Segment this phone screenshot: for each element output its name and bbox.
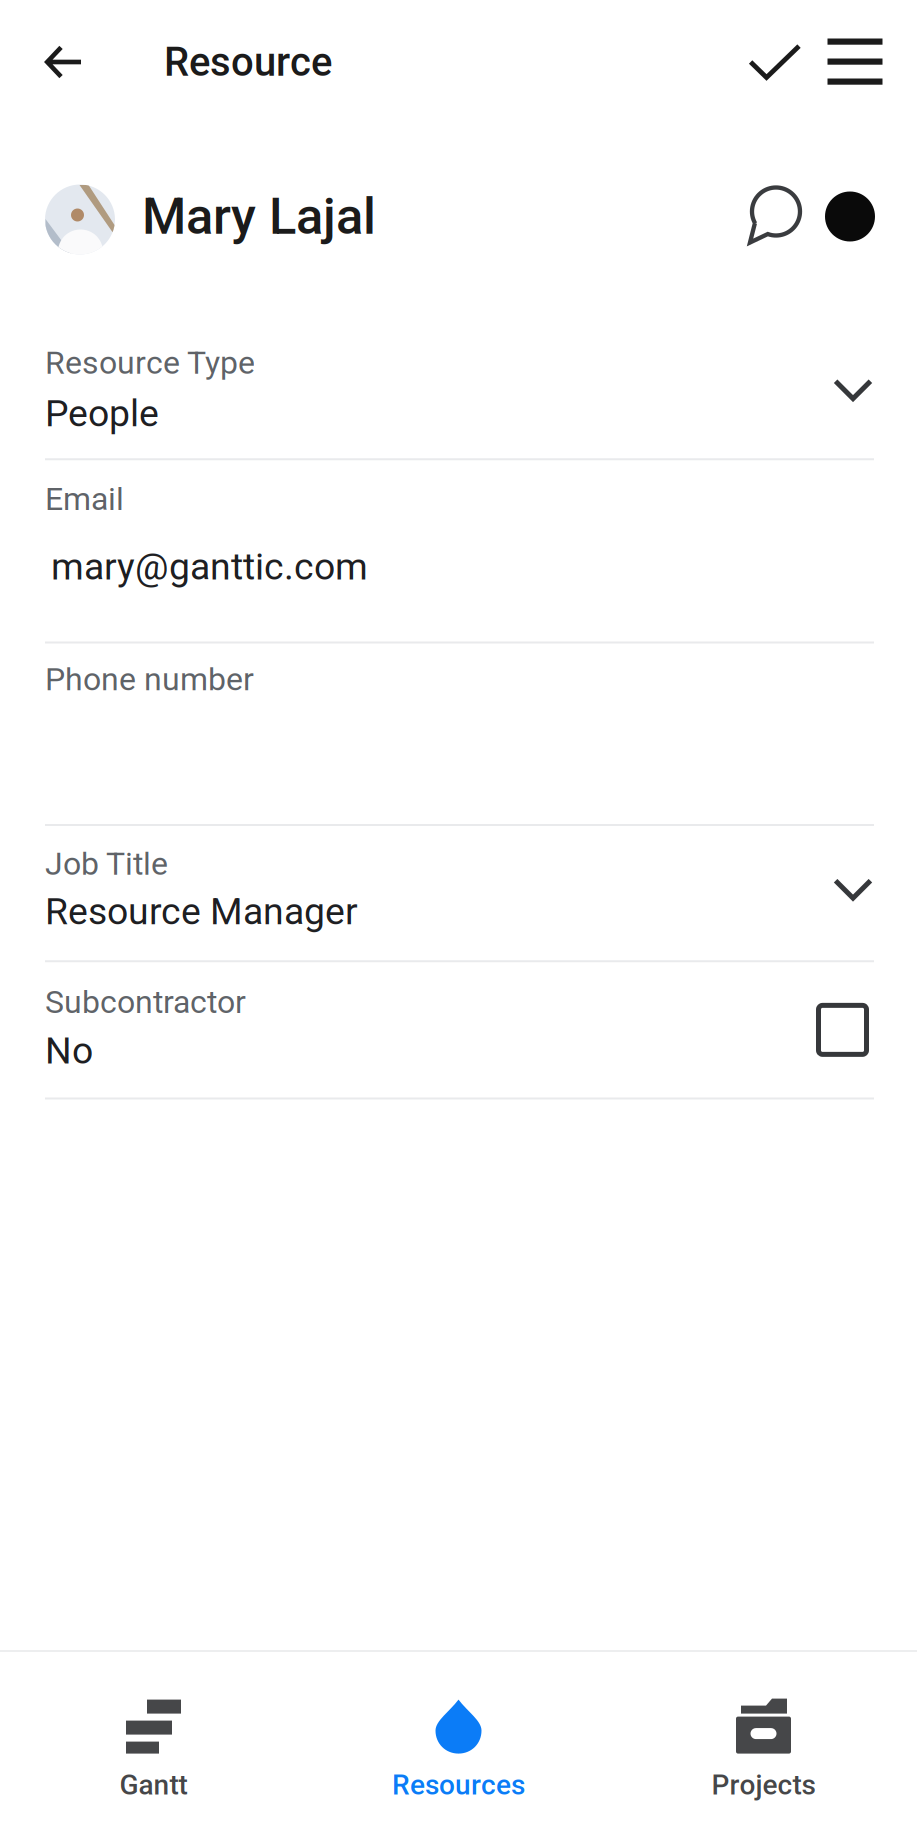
staticText: Resource xyxy=(164,39,332,85)
button[interactable]: Resource Type xyxy=(0,309,917,458)
staticText: Resource Type xyxy=(45,344,255,381)
button[interactable]: Save xyxy=(735,22,815,102)
button[interactable]: Colour xyxy=(810,176,896,256)
staticText: Projects xyxy=(711,1769,815,1801)
button[interactable]: Email xyxy=(0,460,917,641)
staticText: Email xyxy=(45,480,124,518)
button[interactable]: Gantt xyxy=(1,1651,306,1833)
button[interactable]: Messages xyxy=(730,176,810,256)
button[interactable]: Back xyxy=(22,20,106,104)
staticText: Resource Manager xyxy=(45,889,358,933)
button[interactable]: Menu xyxy=(815,22,895,102)
staticText: Gantt xyxy=(119,1769,187,1801)
button[interactable]: Job Title xyxy=(0,826,917,960)
staticText: Mary Lajal xyxy=(142,187,376,246)
staticText: Resources xyxy=(392,1769,525,1801)
button[interactable]: Subcontractor xyxy=(0,962,917,1097)
staticText: Phone number xyxy=(45,660,254,698)
staticText: Job Title xyxy=(45,845,168,882)
staticText: People xyxy=(45,391,159,435)
button[interactable]: Phone number xyxy=(0,643,917,824)
staticText: No xyxy=(45,1029,93,1072)
staticText: Subcontractor xyxy=(45,983,246,1021)
staticText: mary@ganttic.com xyxy=(51,545,368,588)
button[interactable]: Projects xyxy=(611,1651,916,1833)
button[interactable]: Resources xyxy=(306,1651,611,1833)
